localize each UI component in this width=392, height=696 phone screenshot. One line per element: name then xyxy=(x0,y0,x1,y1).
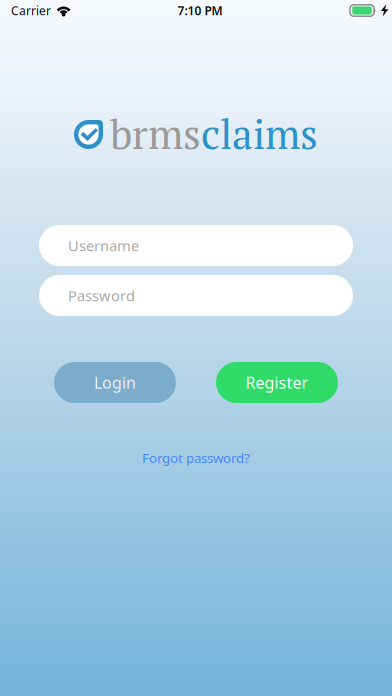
button[interactable]: Username xyxy=(39,225,353,266)
button[interactable]: Password xyxy=(39,275,353,316)
staticText: brms xyxy=(110,106,201,161)
staticText: Forgot password? xyxy=(142,449,250,467)
button[interactable]: Forgot password? xyxy=(132,445,260,471)
staticText: claims xyxy=(201,106,318,161)
staticText: Login xyxy=(94,372,136,393)
button[interactable]: Login xyxy=(54,362,176,403)
staticText: Username xyxy=(68,236,139,255)
staticText: Password xyxy=(68,286,135,305)
button[interactable]: Register xyxy=(216,362,338,403)
staticText: Register xyxy=(245,372,308,393)
staticText: 7:10 PM xyxy=(177,2,222,18)
staticText: Carrier xyxy=(11,2,51,18)
